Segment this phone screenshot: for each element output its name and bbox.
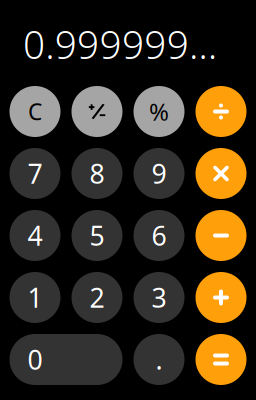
button[interactable]: 8 bbox=[71, 148, 122, 199]
staticText: 3 bbox=[151, 280, 166, 315]
button[interactable]: 4 bbox=[9, 210, 60, 261]
staticText: 9 bbox=[151, 156, 166, 191]
staticText: % bbox=[149, 96, 169, 127]
button[interactable]: 7 bbox=[9, 148, 60, 199]
staticText: 7 bbox=[27, 156, 42, 191]
button[interactable]: 5 bbox=[71, 210, 122, 261]
staticText: 4 bbox=[27, 218, 42, 253]
staticText: 1 bbox=[27, 280, 42, 315]
button[interactable]: C bbox=[9, 86, 60, 137]
button[interactable]: % bbox=[133, 86, 184, 137]
button[interactable]: Multiply bbox=[195, 148, 246, 199]
button[interactable]: 1 bbox=[9, 272, 60, 323]
button[interactable]: 3 bbox=[133, 272, 184, 323]
staticText: 2 bbox=[89, 280, 104, 315]
button[interactable]: Add bbox=[195, 272, 246, 323]
button[interactable]: Toggle sign bbox=[71, 86, 122, 137]
staticText: 8 bbox=[89, 156, 104, 191]
button[interactable]: Equals bbox=[195, 334, 246, 385]
staticText: . bbox=[155, 342, 162, 377]
button[interactable]: 2 bbox=[71, 272, 122, 323]
staticText: 6 bbox=[151, 218, 166, 253]
staticText: 5 bbox=[89, 218, 104, 253]
button[interactable]: 0 bbox=[9, 334, 122, 385]
button[interactable]: 9 bbox=[133, 148, 184, 199]
staticText: 0.99999999 bbox=[23, 18, 233, 70]
button[interactable]: . bbox=[133, 334, 184, 385]
button[interactable]: Subtract bbox=[195, 210, 246, 261]
button[interactable]: Divide bbox=[195, 86, 246, 137]
button[interactable]: 6 bbox=[133, 210, 184, 261]
staticText: 0 bbox=[27, 342, 42, 377]
staticText: C bbox=[28, 96, 42, 126]
